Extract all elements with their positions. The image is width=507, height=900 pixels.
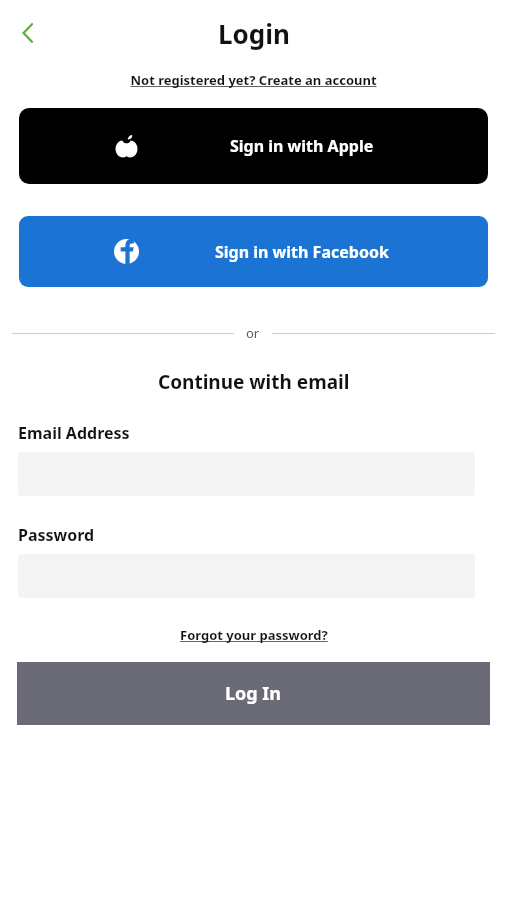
button[interactable]: Not registered yet? Create an account [0, 66, 507, 94]
button[interactable]: Log In [17, 662, 490, 725]
staticText: Sign in with Facebook [215, 241, 389, 263]
staticText: or [246, 324, 260, 342]
staticText: Email Address [18, 422, 130, 444]
staticText: Password [18, 524, 95, 546]
staticText: Continue with email [158, 369, 350, 395]
button[interactable]: Forgot your password? [0, 622, 507, 648]
staticText: Login [218, 16, 290, 51]
button[interactable]: Sign in with Apple [19, 108, 488, 184]
button[interactable]: Sign in with Facebook [19, 216, 488, 287]
button[interactable]: Back [6, 11, 50, 55]
staticText: Forgot your password? [180, 626, 328, 644]
staticText: Sign in with Apple [230, 135, 374, 157]
staticText: Log In [225, 681, 282, 706]
staticText: Not registered yet? Create an account [130, 71, 377, 89]
